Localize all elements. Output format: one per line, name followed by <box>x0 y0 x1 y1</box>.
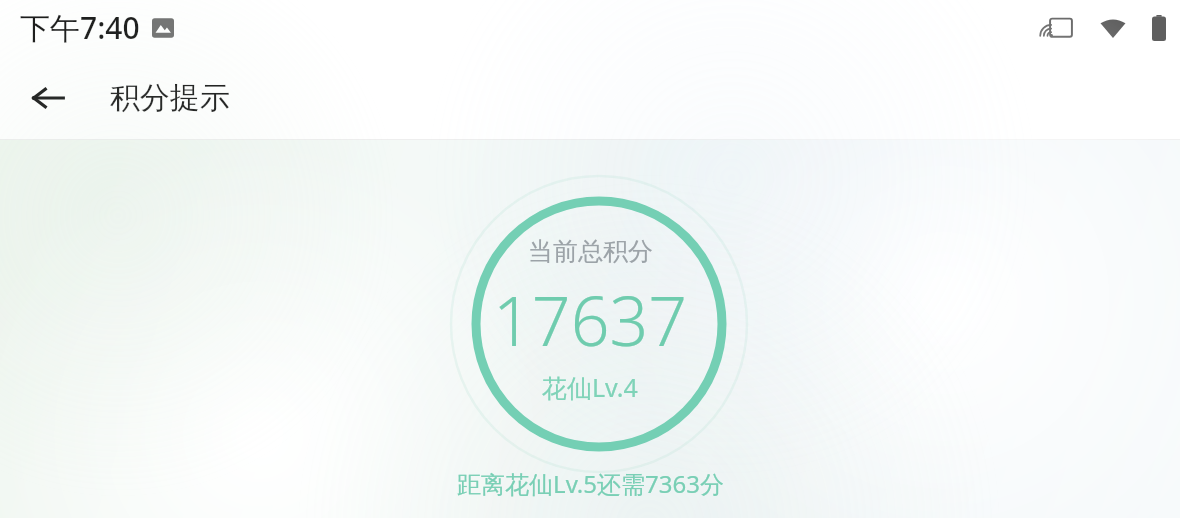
staticText: 距离花仙Lv.5还需7363分 <box>457 467 724 500</box>
staticText: 积分提示 <box>110 79 230 117</box>
staticText: 花仙Lv.4 <box>542 370 638 404</box>
staticText: 17637 <box>493 273 688 366</box>
staticText: 下午7:40 <box>20 7 140 48</box>
staticText: 当前总积分 <box>528 236 653 267</box>
button[interactable]: Back <box>18 68 78 128</box>
